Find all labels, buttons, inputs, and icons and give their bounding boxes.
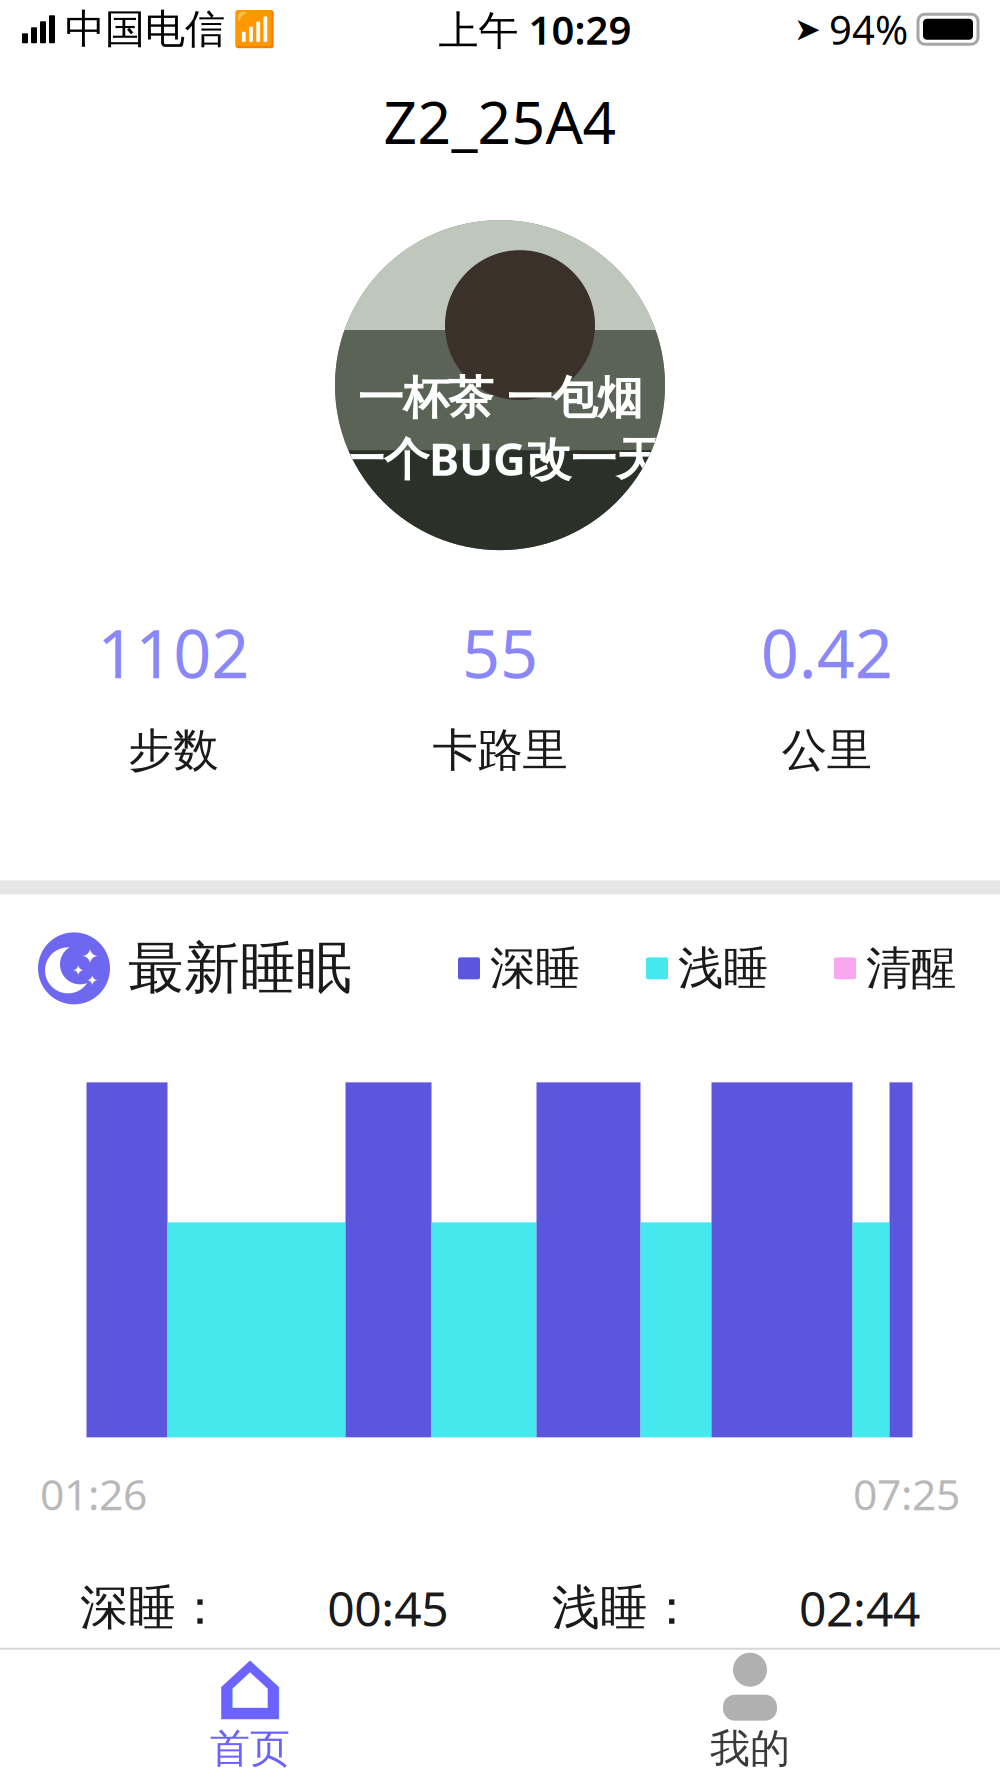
staticText: 步数: [128, 723, 218, 778]
staticText: 清醒: [866, 940, 956, 996]
staticText: 94%: [829, 3, 908, 56]
staticText: 浅睡：: [552, 1578, 696, 1637]
staticText: 深睡: [490, 940, 580, 996]
staticText: 1102: [97, 608, 249, 697]
button[interactable]: ⌂: [0, 1640, 500, 1778]
staticText: Z2_25A4: [383, 82, 616, 160]
staticText: 中国电信: [65, 5, 225, 54]
staticText: 公里: [782, 723, 872, 778]
staticText: 一个BUG改一天: [339, 428, 661, 488]
staticText: 卡路里: [432, 723, 567, 778]
staticText: 55: [462, 608, 538, 697]
button[interactable]: 我的: [500, 1640, 1000, 1778]
staticText: 深睡：: [80, 1578, 224, 1637]
staticText: 00:45: [327, 1576, 448, 1640]
staticText: ⌂: [214, 1629, 285, 1741]
staticText: ➤: [794, 11, 821, 47]
staticText: 📶: [233, 9, 276, 49]
staticText: 一杯茶 一包烟: [358, 370, 642, 426]
staticText: 02:44: [799, 1576, 920, 1640]
staticText: ✦: [72, 962, 84, 979]
staticText: 我的: [710, 1724, 790, 1773]
staticText: ✦: [86, 972, 98, 989]
staticText: 首页: [210, 1724, 290, 1773]
staticText: ✦: [81, 944, 99, 968]
staticText: 01:26: [40, 1465, 147, 1522]
staticText: 07:25: [853, 1465, 960, 1522]
staticText: 浅睡: [678, 940, 768, 996]
staticText: 最新睡眠: [128, 934, 352, 1003]
staticText: 上午 10:29: [438, 3, 631, 56]
staticText: 0.42: [761, 608, 893, 697]
